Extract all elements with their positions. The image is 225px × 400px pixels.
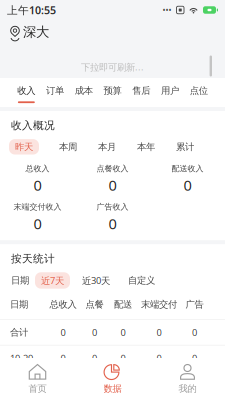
button[interactable]: 首页: [0, 363, 75, 394]
staticText: 合计: [10, 327, 28, 338]
staticText: 广告收入: [96, 202, 128, 212]
staticText: 我的: [178, 383, 196, 394]
staticText: 点餐收入: [96, 164, 128, 173]
staticText: 上午10:55: [7, 3, 56, 17]
staticText: 0: [92, 326, 97, 338]
button[interactable]: 数据: [75, 363, 150, 394]
staticText: 0: [108, 214, 116, 233]
staticText: 总收入: [25, 164, 49, 173]
button[interactable]: 累计: [170, 139, 200, 155]
button[interactable]: 订单: [41, 78, 69, 107]
staticText: 广告: [185, 299, 203, 310]
staticText: 0: [192, 352, 197, 364]
staticText: 0: [92, 352, 97, 364]
staticText: 深大: [23, 24, 49, 40]
staticText: •••: [162, 5, 171, 15]
button[interactable]: 收入: [12, 78, 41, 107]
staticText: 售后: [132, 85, 150, 96]
button[interactable]: 点位: [184, 78, 213, 107]
staticText: 0: [156, 352, 161, 364]
staticText: 用户: [161, 85, 179, 96]
staticText: 自定义: [128, 275, 155, 286]
staticText: 10-29: [10, 352, 33, 364]
staticText: 配送收入: [171, 164, 203, 173]
button[interactable]: 近30天: [76, 272, 116, 289]
staticText: 配送: [114, 299, 132, 310]
button[interactable]: 自定义: [122, 273, 161, 288]
staticText: 成本: [75, 85, 93, 96]
staticText: 日期: [10, 299, 28, 310]
staticText: 0: [192, 326, 197, 338]
staticText: 预算: [103, 85, 121, 96]
staticText: 末端交付: [141, 299, 177, 310]
staticText: 0: [108, 175, 116, 195]
staticText: 订单: [46, 85, 64, 96]
staticText: 近7天: [41, 274, 64, 287]
button[interactable]: 售后: [127, 78, 156, 107]
button[interactable]: 我的: [150, 363, 225, 394]
staticText: 末端交付收入: [13, 202, 61, 212]
staticText: 数据: [103, 383, 121, 394]
staticText: 收入: [17, 85, 35, 96]
staticText: 收入概况: [11, 119, 55, 132]
staticText: 本年: [137, 141, 155, 153]
button[interactable]: 用户: [156, 78, 184, 107]
staticText: 近30天: [82, 274, 110, 287]
button[interactable]: 近7天: [35, 272, 70, 289]
staticText: 0: [60, 326, 65, 338]
staticText: 本月: [98, 141, 116, 153]
staticText: 日期: [11, 275, 29, 286]
staticText: 0: [120, 352, 125, 364]
staticText: 0: [33, 175, 41, 195]
staticText: 下拉即可刷新...: [81, 61, 144, 73]
staticText: 0: [33, 214, 41, 233]
staticText: 总收入: [49, 299, 76, 310]
button[interactable]: 预算: [98, 78, 127, 107]
staticText: 0: [183, 175, 191, 195]
button[interactable]: 昨天: [9, 139, 39, 155]
staticText: 累计: [176, 141, 194, 153]
staticText: 按天统计: [11, 252, 55, 265]
staticText: 本周: [59, 141, 77, 153]
staticText: 点位: [190, 85, 208, 96]
staticText: 昨天: [15, 141, 33, 153]
button[interactable]: 本年: [131, 139, 161, 155]
staticText: 点餐: [85, 299, 103, 310]
button[interactable]: 本周: [53, 139, 83, 155]
staticText: 0: [156, 326, 161, 338]
staticText: 0: [60, 352, 65, 364]
staticText: 首页: [28, 383, 46, 394]
staticText: 0: [120, 326, 125, 338]
button[interactable]: 本月: [92, 139, 122, 155]
button[interactable]: 成本: [69, 78, 98, 107]
